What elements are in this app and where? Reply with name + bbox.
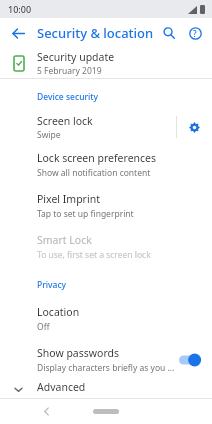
staticText: Security update — [37, 50, 115, 64]
staticText: Security & location — [37, 24, 154, 42]
staticText: Smart Lock — [37, 233, 92, 247]
staticText: 5 February 2019 — [37, 65, 102, 77]
staticText: Advanced — [37, 380, 86, 394]
button[interactable]: Search — [156, 20, 182, 46]
button[interactable]: Screen lock settings — [177, 110, 212, 144]
button[interactable]: Smart Lock — [0, 226, 212, 267]
staticText: Pixel Imprint — [37, 192, 100, 206]
button[interactable]: Help — [182, 20, 208, 46]
staticText: ? — [193, 28, 197, 39]
staticText: 10:00 — [8, 3, 32, 15]
staticText: Lock screen preferences — [37, 151, 157, 165]
staticText: Tap to set up fingerprint — [37, 208, 134, 220]
staticText: Swipe — [37, 129, 61, 141]
staticText: Show all notification content — [37, 167, 151, 179]
button[interactable]: Pixel Imprint — [0, 185, 212, 226]
button[interactable]: Back — [4, 19, 32, 47]
button[interactable]: Back — [36, 401, 56, 421]
staticText: Display characters briefly as you type — [37, 362, 175, 374]
button[interactable]: Lock screen preferences — [0, 144, 212, 185]
button[interactable]: Security update — [0, 48, 212, 78]
staticText: Location — [37, 305, 80, 319]
button[interactable]: Show passwords — [0, 339, 212, 380]
button[interactable]: Screen lock — [0, 114, 176, 141]
staticText: Show passwords — [37, 346, 120, 360]
staticText: Device security — [37, 91, 99, 103]
button[interactable]: Advanced — [0, 380, 212, 398]
staticText: Privacy — [37, 279, 67, 291]
staticText: Screen lock — [37, 114, 93, 128]
staticText: Off — [37, 321, 50, 333]
button[interactable]: Location — [0, 298, 212, 339]
button[interactable]: Home — [90, 404, 122, 418]
staticText: To use, first set a screen lock — [37, 249, 151, 261]
button[interactable]: Show passwords toggle — [179, 351, 203, 369]
